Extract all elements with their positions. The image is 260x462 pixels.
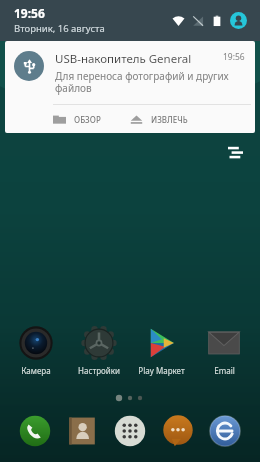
button[interactable]: ИЗВЛЕЧЬ <box>130 105 255 133</box>
staticText: USB-накопитель General <box>55 51 223 67</box>
staticText: Play Маркет <box>138 365 185 376</box>
button[interactable]: User profile <box>230 12 247 29</box>
staticText: Вторник, 16 августа <box>14 22 105 35</box>
staticText: 19:56 <box>223 51 245 63</box>
staticText: Email <box>214 365 235 376</box>
button[interactable]: Настройки <box>69 324 129 378</box>
button[interactable]: Play Маркет <box>131 324 191 378</box>
button[interactable]: USB-накопитель General <box>5 41 255 133</box>
button[interactable]: Камера <box>6 324 66 378</box>
button[interactable]: Clear all notifications <box>224 141 246 163</box>
button[interactable]: Browser <box>206 412 244 450</box>
button[interactable]: Phone <box>16 412 54 450</box>
staticText: ИЗВЛЕЧЬ <box>151 114 188 125</box>
staticText: Для переноса фотографий и других файлов <box>55 69 245 95</box>
staticText: 19:56 <box>14 5 45 21</box>
staticText: ОБЗОР <box>74 114 101 125</box>
button[interactable]: Contacts <box>63 412 101 450</box>
staticText: Настройки <box>78 365 120 376</box>
button[interactable]: Email <box>194 324 254 378</box>
button[interactable]: ОБЗОР <box>53 105 130 133</box>
button[interactable]: All apps <box>111 412 149 450</box>
button[interactable]: Messaging <box>159 412 197 450</box>
staticText: Камера <box>21 365 51 376</box>
